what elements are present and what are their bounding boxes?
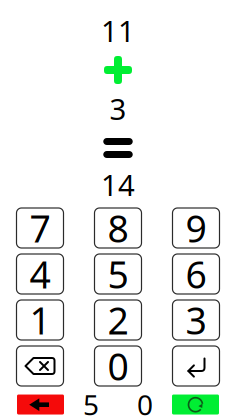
button[interactable]: Back: [17, 394, 64, 414]
button[interactable]: 2: [94, 300, 141, 340]
staticText: 9: [185, 203, 206, 253]
staticText: 5: [83, 386, 99, 420]
staticText: 11: [101, 11, 135, 50]
button[interactable]: 7: [16, 208, 63, 248]
button[interactable]: Enter: [172, 346, 219, 386]
staticText: 0: [137, 386, 153, 420]
staticText: 7: [29, 203, 50, 253]
staticText: 8: [107, 203, 128, 253]
button[interactable]: New problem: [172, 394, 219, 414]
staticText: 2: [107, 295, 128, 345]
staticText: 1: [29, 295, 50, 345]
staticText: 6: [185, 249, 206, 299]
staticText: 3: [109, 89, 126, 128]
button[interactable]: 1: [16, 300, 63, 340]
button[interactable]: Delete: [16, 346, 63, 386]
button[interactable]: 4: [16, 254, 63, 294]
button[interactable]: 8: [94, 208, 141, 248]
staticText: 3: [185, 295, 206, 345]
button[interactable]: 5: [94, 254, 141, 294]
button[interactable]: 3: [172, 300, 219, 340]
staticText: 14: [101, 165, 135, 204]
staticText: 5: [107, 249, 128, 299]
button[interactable]: 6: [172, 254, 219, 294]
button[interactable]: 9: [172, 208, 219, 248]
staticText: 0: [107, 341, 128, 391]
staticText: 4: [29, 249, 50, 299]
button[interactable]: 0: [94, 346, 141, 386]
